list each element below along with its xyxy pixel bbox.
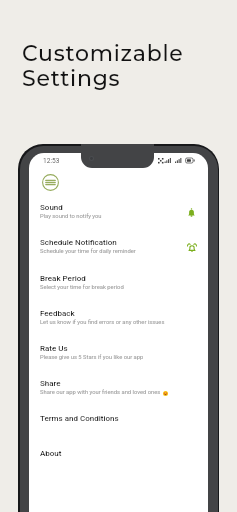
staticText: Terms and Conditions xyxy=(40,414,119,423)
staticText: Schedule Notification xyxy=(40,238,117,247)
staticText: Break Period xyxy=(40,274,86,283)
staticText: Sound xyxy=(40,203,63,212)
button[interactable]: Feedback xyxy=(29,301,208,334)
button[interactable]: Sound xyxy=(29,195,208,228)
staticText: Share xyxy=(40,379,61,388)
staticText: Schedule your time for daily reminder xyxy=(40,248,136,255)
staticText: Feedback xyxy=(40,309,75,318)
button[interactable]: Share xyxy=(29,371,208,404)
staticText: Please give us 5 Stars if you like our a… xyxy=(40,354,144,361)
button[interactable]: Schedule Notification xyxy=(29,230,208,263)
staticText: Settings xyxy=(22,65,121,92)
button[interactable]: Open navigation menu xyxy=(42,174,59,191)
button[interactable]: Rate Us xyxy=(29,336,208,369)
button[interactable]: Break Period xyxy=(29,266,208,299)
button[interactable]: About xyxy=(29,441,208,474)
staticText: Share our app with your friends and love… xyxy=(40,389,161,396)
staticText: Customizable xyxy=(22,40,184,67)
staticText: Rate Us xyxy=(40,344,68,353)
staticText: 12:53 xyxy=(43,157,60,165)
staticText: Select your time for break period xyxy=(40,284,124,291)
staticText: Play sound to notify you xyxy=(40,213,102,220)
staticText: Let us know if you find errors or any ot… xyxy=(40,319,165,326)
button[interactable]: Terms and Conditions xyxy=(29,406,208,439)
staticText: About xyxy=(40,449,62,458)
